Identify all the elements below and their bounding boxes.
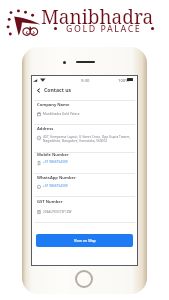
staticText: 100% — [118, 78, 129, 84]
staticText: 407, Kempanna Layout, G Street Cross, Op… — [43, 135, 131, 139]
staticText: Address — [37, 126, 54, 132]
button[interactable]: View on Map — [36, 234, 133, 247]
staticText: +91 9866754309 — [43, 160, 68, 164]
button[interactable]: Back — [36, 83, 138, 97]
staticText: Company Name — [37, 102, 70, 108]
staticText: GST Number — [37, 199, 63, 205]
staticText: Contact us — [44, 87, 72, 94]
staticText: Mobile Number — [37, 152, 69, 158]
staticText: GOLD PALACE — [66, 23, 142, 35]
staticText: Manibhadra Gold Palace — [43, 112, 80, 116]
staticText: 29AELPK0373F1ZW — [43, 210, 72, 214]
staticText: View on Map — [74, 238, 96, 243]
other: Back — [36, 88, 41, 93]
staticText: 9:30 — [81, 78, 90, 84]
staticText: +91 9866754309 — [43, 184, 68, 188]
staticText: Nagarbhavi, Bangalore, Karnataka, 560002 — [43, 139, 108, 143]
staticText: Manibhadra — [41, 4, 154, 30]
staticText: WhatsApp Number — [37, 175, 76, 181]
